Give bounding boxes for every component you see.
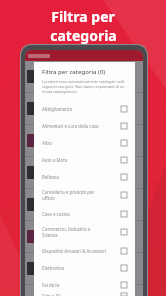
staticText: Commercio, Industria e Scienza (42, 226, 117, 238)
button[interactable]: Altro (34, 134, 135, 151)
button[interactable]: Cancelleria e prodotti per ufficio (34, 185, 135, 205)
staticText: Fai da te (42, 282, 117, 288)
staticText: Filtra per (51, 7, 115, 26)
button[interactable]: Casa e cucina (34, 205, 135, 222)
staticText: Casa e cucina (42, 211, 117, 217)
button[interactable]: Alimentari e cura della casa (34, 117, 135, 134)
button[interactable]: Dispositivi Amazon & Accessori (34, 242, 135, 259)
staticText: Alimentari e cura della casa (42, 123, 117, 129)
button[interactable]: Abbigliamento (34, 100, 135, 117)
button[interactable]: Elettronica (34, 259, 135, 276)
staticText: I prodotti sono automaticamente cataloga… (42, 79, 127, 94)
staticText: Altro (42, 140, 117, 146)
button[interactable]: Commercio, Industria e Scienza (34, 222, 135, 242)
button[interactable]: Film e TV (34, 293, 135, 296)
staticText: Elettronica (42, 265, 117, 271)
staticText: Auto e Moto (42, 157, 117, 163)
staticText: Dispositivi Amazon & Accessori (42, 248, 117, 254)
button[interactable]: Auto e Moto (34, 151, 135, 168)
staticText: Bellezza (42, 174, 117, 180)
staticText: Abbigliamento (42, 106, 117, 112)
button[interactable]: Bellezza (34, 168, 135, 185)
staticText: categoria (50, 26, 117, 45)
button[interactable]: Fai da te (34, 276, 135, 293)
staticText: Cancelleria e prodotti per ufficio (42, 189, 117, 201)
staticText: Film e TV (42, 293, 117, 296)
staticText: Filtra per categoria (0) (42, 68, 106, 76)
